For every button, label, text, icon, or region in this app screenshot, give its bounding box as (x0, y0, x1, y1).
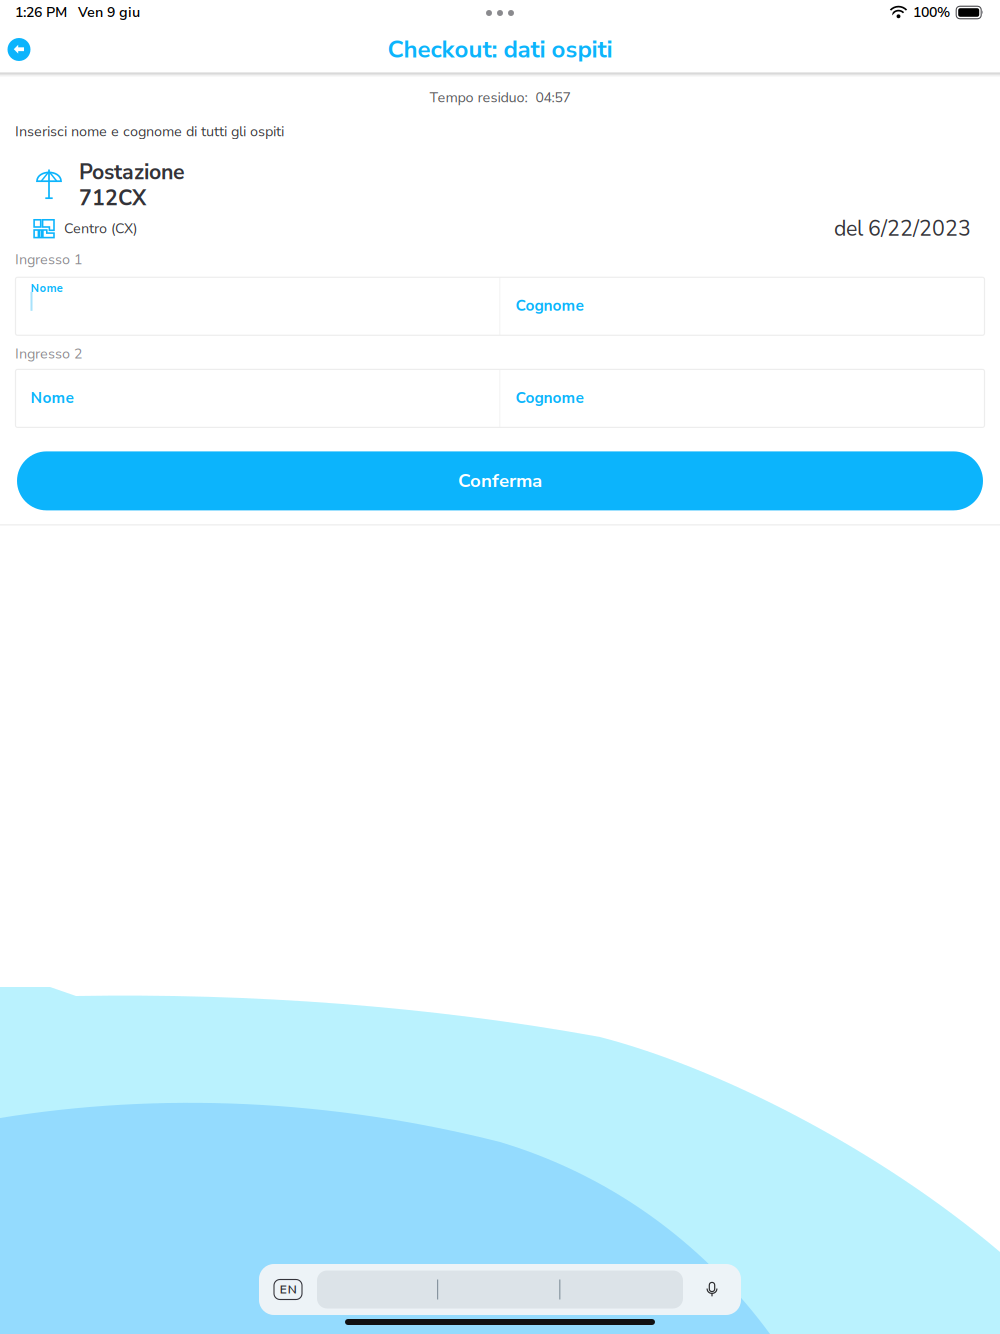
button[interactable]: Cognome (500, 277, 984, 335)
staticText: Cognome (515, 387, 583, 408)
staticText: Ingresso 2 (15, 344, 82, 363)
button[interactable]: Nome (15, 369, 499, 427)
button[interactable]: Cognome (500, 369, 984, 427)
staticText: Ven 9 giu (78, 3, 140, 22)
staticText: Centro (CX) (64, 219, 138, 238)
staticText: Tempo residuo: 04:57 (429, 88, 570, 107)
staticText: Checkout: dati ospiti (387, 33, 612, 66)
staticText: Postazione (79, 158, 185, 187)
staticText: Cognome (515, 295, 583, 316)
staticText: Nome (30, 281, 62, 296)
staticText: 100% (913, 3, 950, 22)
button[interactable]: Indietro (0, 27, 38, 71)
staticText: 712CX (79, 184, 146, 213)
staticText: Conferma (458, 468, 542, 494)
staticText: EN (279, 1281, 296, 1298)
staticText: del 6/22/2023 (834, 214, 971, 243)
button[interactable]: Conferma (17, 451, 983, 510)
staticText: Nome (30, 387, 73, 408)
staticText: 1:26 PM (15, 3, 67, 22)
button[interactable]: Dettatura (683, 1264, 741, 1315)
staticText: Inserisci nome e cognome di tutti gli os… (15, 122, 284, 141)
button[interactable]: Nome (15, 277, 499, 335)
button[interactable]: Lingua EN (259, 1264, 317, 1315)
staticText: Ingresso 1 (15, 250, 82, 269)
